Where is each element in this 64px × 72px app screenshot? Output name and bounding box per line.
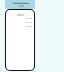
button[interactable] [5, 0, 35, 9]
